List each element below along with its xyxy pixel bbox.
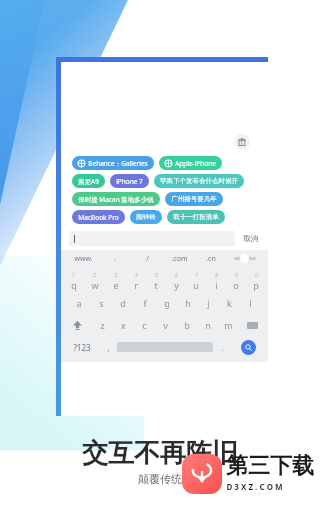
staticText: 索尼A9 xyxy=(78,177,99,186)
staticText: g xyxy=(164,297,170,309)
staticText: o xyxy=(233,279,239,291)
staticText: 9 xyxy=(235,272,238,278)
staticText: 2 xyxy=(93,272,96,278)
staticText: 闹钟铃 xyxy=(136,213,156,221)
button[interactable]: . xyxy=(213,336,231,358)
staticText: D 3 X Z . C O M xyxy=(226,481,283,492)
staticText: .cn xyxy=(206,254,216,264)
button[interactable]: Apple-iPhone xyxy=(159,156,222,170)
button[interactable]: 7 xyxy=(186,270,206,292)
staticText: i xyxy=(215,279,218,291)
button[interactable]: g xyxy=(156,292,177,314)
staticText: n xyxy=(205,319,211,331)
staticText: t xyxy=(154,279,158,291)
staticText: , xyxy=(107,342,110,353)
button[interactable]: 取消 xyxy=(241,234,260,243)
staticText: MacBook Pro xyxy=(78,213,119,222)
staticText: 取消 xyxy=(243,234,258,243)
button[interactable]: Delete history xyxy=(234,134,250,150)
button[interactable]: Shift xyxy=(63,314,91,336)
button[interactable]: 闹钟铃 xyxy=(130,210,162,224)
staticText: / xyxy=(146,254,149,264)
staticText: Behance：Galleries xyxy=(88,159,148,168)
staticText: x xyxy=(121,319,126,331)
button[interactable]: b xyxy=(176,314,197,336)
staticText: v xyxy=(163,319,168,331)
button[interactable]: x xyxy=(113,314,134,336)
button[interactable]: m xyxy=(218,314,239,336)
button[interactable]: f xyxy=(134,292,156,314)
button[interactable]: 0 xyxy=(246,270,266,292)
staticText: 1 xyxy=(72,272,75,278)
button[interactable]: ?123 xyxy=(64,336,99,358)
staticText: 广州摇号要几年 xyxy=(171,195,217,203)
button[interactable]: k xyxy=(219,292,240,314)
button[interactable] xyxy=(69,231,235,246)
button[interactable]: 1 xyxy=(63,270,84,292)
staticText: w xyxy=(91,279,99,291)
button[interactable]: d xyxy=(112,292,134,314)
button[interactable]: a xyxy=(68,292,90,314)
button[interactable]: Behance：Galleries xyxy=(72,156,154,170)
button[interactable]: z xyxy=(91,314,113,336)
staticText: . xyxy=(114,254,116,264)
button[interactable]: 保时捷 Macan 落地多少钱 xyxy=(72,192,160,206)
button[interactable]: Search xyxy=(241,340,256,355)
button[interactable]: 苹果下个发布会什么时候开 xyxy=(154,174,244,188)
button[interactable] xyxy=(227,250,262,267)
button[interactable]: 5 xyxy=(146,270,166,292)
button[interactable]: MacBook Pro xyxy=(72,210,125,224)
button[interactable]: j xyxy=(198,292,219,314)
button[interactable]: v xyxy=(155,314,176,336)
staticText: z xyxy=(100,319,105,331)
button[interactable]: 索尼A9 xyxy=(72,174,105,188)
button[interactable]: 2 xyxy=(84,270,105,292)
button[interactable]: .com xyxy=(163,250,195,267)
staticText: a xyxy=(76,297,82,309)
staticText: u xyxy=(193,279,199,291)
button[interactable]: 4 xyxy=(126,270,146,292)
staticText: www. xyxy=(74,254,93,264)
button[interactable]: 3 xyxy=(105,270,126,292)
staticText: d xyxy=(120,297,126,309)
button[interactable]: c xyxy=(134,314,155,336)
button[interactable]: l xyxy=(240,292,261,314)
button[interactable]: n xyxy=(197,314,218,336)
staticText: 双十一打折清单 xyxy=(173,213,219,221)
button[interactable]: Backspace xyxy=(239,314,266,336)
staticText: Apple-iPhone xyxy=(175,159,216,168)
button[interactable]: 6 xyxy=(166,270,186,292)
staticText: 苹果下个发布会什么时候开 xyxy=(160,177,238,185)
button[interactable]: .cn xyxy=(195,250,227,267)
staticText: 交互不再陈旧 xyxy=(82,437,238,470)
staticText: c xyxy=(142,319,147,331)
staticText: 颠覆传统 xyxy=(138,472,182,486)
button[interactable]: 双十一打折清单 xyxy=(167,210,225,224)
button[interactable]: h xyxy=(177,292,198,314)
staticText: ?123 xyxy=(73,342,91,353)
button[interactable]: 广州摇号要几年 xyxy=(165,192,223,206)
staticText: . xyxy=(221,342,224,353)
staticText: .com xyxy=(171,254,188,264)
button[interactable]: iPhone 7 xyxy=(110,174,149,188)
button[interactable]: 9 xyxy=(226,270,246,292)
staticText: e xyxy=(113,279,119,291)
staticText: 6 xyxy=(175,272,178,278)
button[interactable]: 8 xyxy=(206,270,226,292)
button[interactable]: / xyxy=(131,250,163,267)
staticText: 7 xyxy=(195,272,198,278)
staticText: m xyxy=(224,319,233,331)
staticText: 第三下载 xyxy=(226,452,314,480)
button[interactable]: www. xyxy=(67,250,99,267)
button[interactable]: , xyxy=(99,336,117,358)
staticText: 保时捷 Macan 落地多少钱 xyxy=(78,195,154,204)
staticText: l xyxy=(249,297,252,309)
staticText: h xyxy=(185,297,191,309)
staticText: j xyxy=(207,297,210,309)
button[interactable]: s xyxy=(90,292,112,314)
staticText: 0 xyxy=(255,272,258,278)
staticText: iPhone 7 xyxy=(116,177,143,186)
staticText: r xyxy=(134,279,138,291)
